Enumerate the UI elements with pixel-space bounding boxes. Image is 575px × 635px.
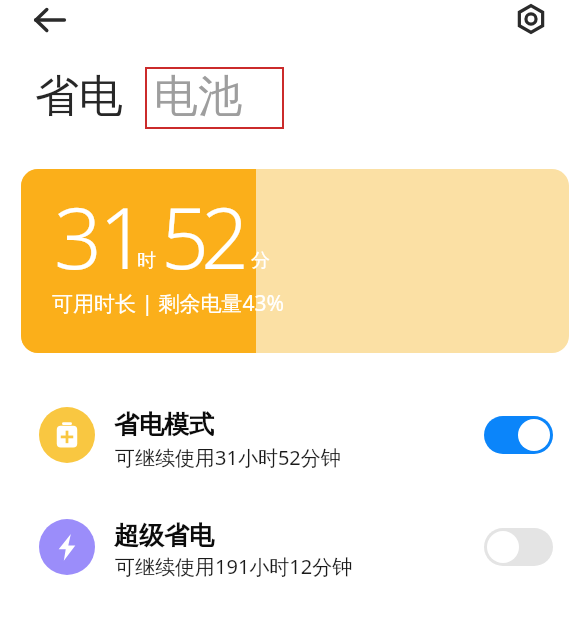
button[interactable]: Back bbox=[28, 0, 72, 42]
button[interactable]: 省电模式 bbox=[0, 401, 575, 469]
button[interactable] bbox=[484, 528, 553, 566]
staticText: 分 bbox=[251, 249, 270, 273]
staticText: 可用时长 | 剩余电量43% bbox=[52, 289, 284, 318]
staticText: 52 bbox=[161, 179, 241, 293]
staticText: 省电模式 bbox=[114, 409, 214, 440]
button[interactable]: 31 bbox=[21, 169, 569, 353]
staticText: 31 bbox=[54, 179, 144, 293]
staticText: 时 bbox=[137, 249, 156, 273]
button[interactable]: 电池 bbox=[145, 67, 284, 129]
button[interactable]: Settings bbox=[509, 0, 553, 41]
staticText: 省电 bbox=[35, 69, 123, 124]
staticText: 可继续使用191小时12分钟 bbox=[115, 553, 353, 580]
button[interactable]: 省电 bbox=[35, 69, 123, 124]
button[interactable]: 超级省电 bbox=[0, 513, 575, 581]
staticText: 超级省电 bbox=[114, 520, 214, 551]
button[interactable] bbox=[484, 416, 553, 454]
staticText: 可继续使用31小时52分钟 bbox=[115, 444, 341, 471]
staticText: 电池 bbox=[154, 69, 242, 124]
